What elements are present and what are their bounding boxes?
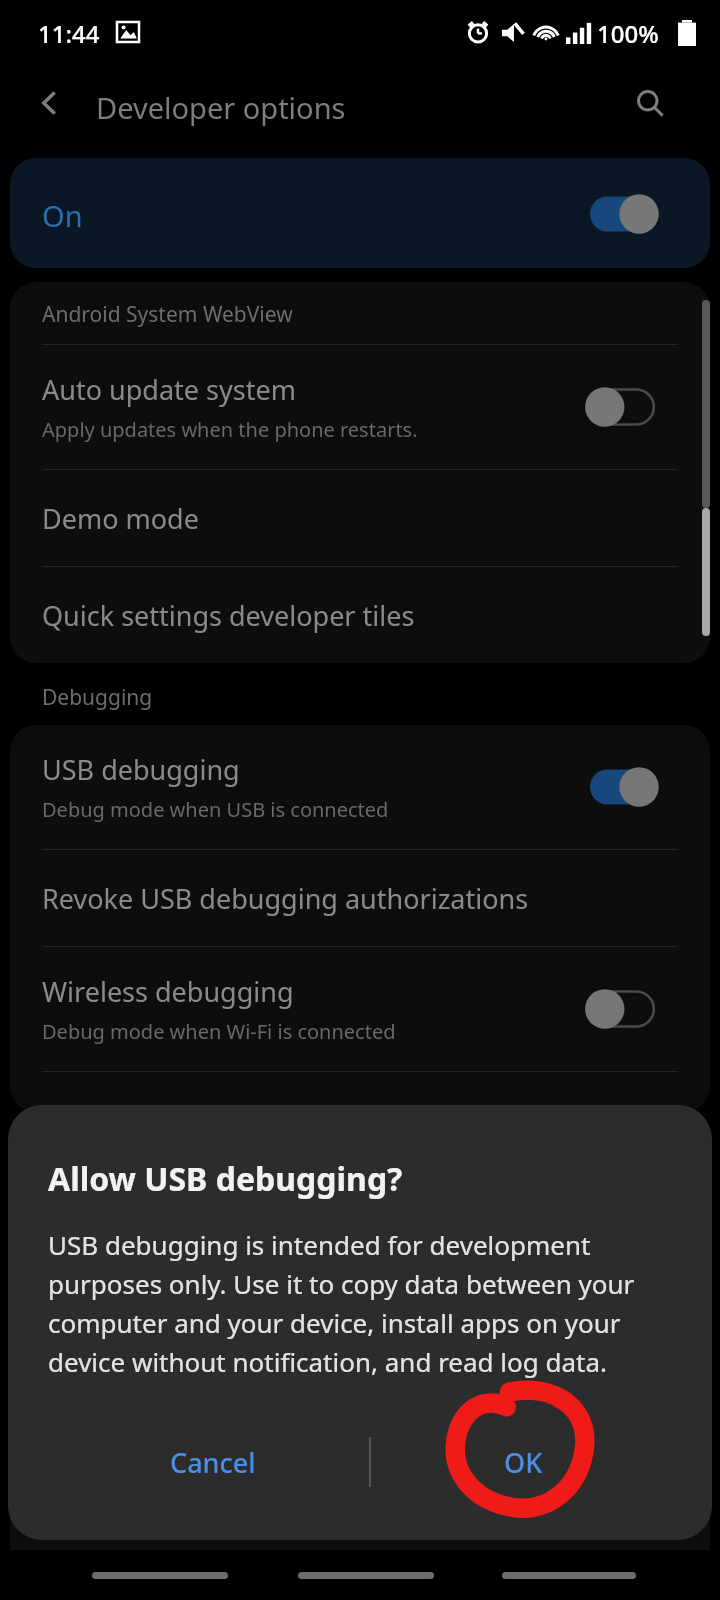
button[interactable]: Auto update system xyxy=(10,345,710,469)
staticText: Auto update system xyxy=(42,371,296,408)
staticText: 11:44 xyxy=(38,17,100,50)
staticText: On xyxy=(42,196,83,235)
button[interactable]: Cancel xyxy=(138,1425,288,1499)
staticText: Debug mode when Wi-Fi is connected xyxy=(42,1018,396,1045)
staticText: 100% xyxy=(597,17,659,50)
staticText: Debugging xyxy=(42,683,153,712)
button[interactable]: USB debugging xyxy=(10,725,710,849)
button[interactable]: Home xyxy=(298,1572,434,1579)
button[interactable]: Back xyxy=(502,1572,636,1579)
staticText: OK xyxy=(504,1444,543,1481)
staticText: Wireless debugging xyxy=(42,973,294,1010)
button[interactable]: Demo mode xyxy=(10,470,710,566)
staticText: Apply updates when the phone restarts. xyxy=(42,416,418,443)
staticText: USB debugging is intended for developmen… xyxy=(48,1227,652,1379)
staticText: Allow USB debugging? xyxy=(48,1157,403,1201)
button[interactable]: OK xyxy=(448,1425,598,1499)
button[interactable]: On xyxy=(10,158,710,268)
staticText: Android System WebView xyxy=(42,300,293,329)
button[interactable]: Toggle off xyxy=(590,387,666,427)
button[interactable]: Toggle off xyxy=(590,989,666,1029)
staticText: Demo mode xyxy=(42,500,199,537)
button[interactable]: Toggle on xyxy=(590,767,666,807)
button[interactable]: Back xyxy=(22,75,78,131)
button[interactable]: Quick settings developer tiles xyxy=(10,567,710,663)
staticText: Developer options xyxy=(96,88,346,127)
button[interactable]: Toggle on xyxy=(590,194,666,234)
staticText: Cancel xyxy=(170,1444,256,1481)
staticText: Revoke USB debugging authorizations xyxy=(42,880,529,917)
button[interactable]: Revoke USB debugging authorizations xyxy=(10,850,710,946)
staticText: USB debugging xyxy=(42,751,240,788)
staticText: Quick settings developer tiles xyxy=(42,597,415,634)
button[interactable]: Search xyxy=(622,75,678,131)
staticText: Debug mode when USB is connected xyxy=(42,796,389,823)
button[interactable]: Recents xyxy=(92,1572,228,1579)
button[interactable]: Wireless debugging xyxy=(10,947,710,1071)
